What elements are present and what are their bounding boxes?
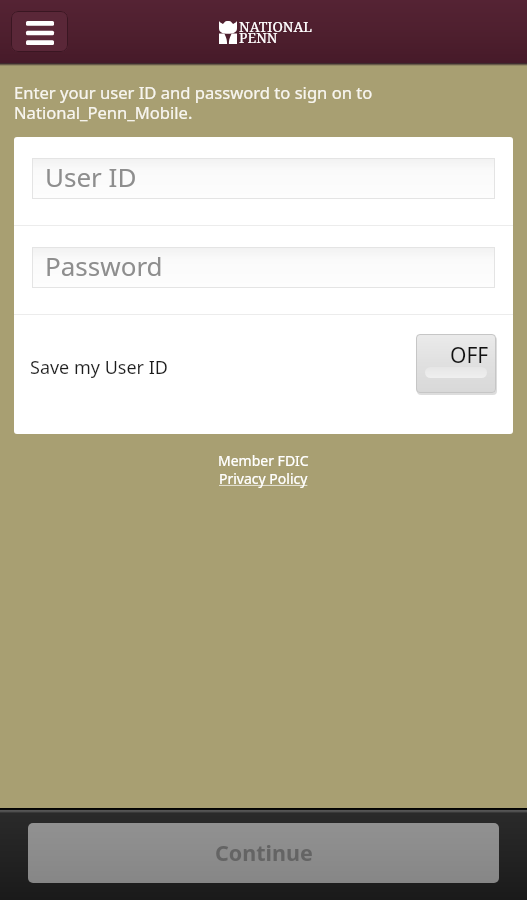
staticText: OFF [450, 341, 489, 370]
staticText: User ID [45, 159, 137, 194]
staticText: Password [45, 248, 163, 283]
staticText: NATIONAL [239, 17, 313, 36]
button[interactable]: Continue [28, 823, 499, 883]
button[interactable]: Privacy Policy [219, 469, 308, 488]
staticText: Enter your user ID and password to sign … [14, 81, 417, 124]
staticText: PENN [239, 28, 278, 47]
staticText: Save my User ID [30, 355, 168, 380]
button[interactable]: Save my User ID, off [416, 334, 496, 393]
staticText: Member FDIC [218, 451, 309, 470]
button[interactable]: Password [32, 247, 495, 288]
button[interactable]: Open navigation menu [11, 11, 68, 52]
button[interactable]: Save my User ID [14, 315, 513, 434]
button[interactable]: User ID [32, 158, 495, 199]
staticText: Continue [215, 838, 313, 867]
